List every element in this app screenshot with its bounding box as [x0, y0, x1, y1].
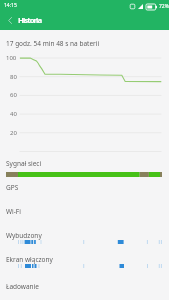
staticText: Wi-Fi [6, 207, 21, 216]
staticText: Historia [18, 15, 42, 26]
staticText: Wybudzony [6, 231, 42, 240]
staticText: 80 [10, 73, 17, 81]
button[interactable]: Ładowanie [0, 275, 169, 299]
staticText: 17 godz. 54 min 48 s na baterii [6, 39, 100, 48]
button[interactable]: Ekran włączony [0, 251, 169, 275]
staticText: 72% [159, 3, 169, 10]
staticText: 14:15 [4, 2, 17, 9]
staticText: 100 [6, 54, 17, 62]
staticText: GPS [6, 183, 19, 192]
button[interactable]: Back [1, 11, 18, 30]
button[interactable]: Wybudzony [0, 227, 169, 251]
staticText: 60 [10, 91, 17, 99]
staticText: Ekran włączony [6, 255, 53, 264]
staticText: Sygnał sieci [6, 159, 42, 168]
button[interactable]: Wi-Fi [0, 203, 169, 227]
staticText: 40 [10, 110, 17, 118]
staticText: 20 [10, 129, 17, 137]
staticText: Ładowanie [6, 282, 39, 291]
button[interactable]: GPS [0, 179, 169, 203]
button[interactable]: Sygnał sieci [0, 155, 169, 179]
